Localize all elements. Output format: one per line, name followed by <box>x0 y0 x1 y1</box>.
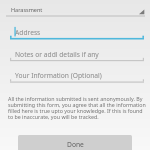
button[interactable]: Address <box>10 28 144 40</box>
staticText: Address <box>15 28 41 37</box>
staticText: Notes or addl details if any <box>15 50 99 59</box>
staticText: All the information submitted is sent an… <box>8 95 148 121</box>
staticText: Your Information (Optional) <box>15 71 102 80</box>
staticText: Done <box>67 140 84 149</box>
staticText: Harassment <box>11 6 43 13</box>
button[interactable]: Done <box>18 135 132 150</box>
button[interactable]: Notes or addl details if any <box>10 50 144 62</box>
button[interactable]: Harassment <box>6 3 145 16</box>
button[interactable]: Your Information (Optional) <box>10 71 144 83</box>
